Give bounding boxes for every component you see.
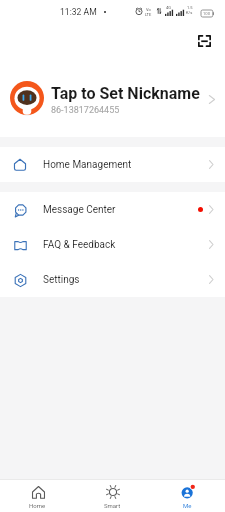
staticText: Settings xyxy=(43,274,80,286)
staticText: Home Management xyxy=(43,159,132,171)
staticText: Vo xyxy=(146,7,151,12)
staticText: Smart xyxy=(104,502,121,509)
button[interactable]: FAQ & Feedback xyxy=(0,227,225,262)
staticText: 1.5 xyxy=(187,5,193,10)
staticText: LTE xyxy=(145,12,152,17)
button[interactable]: Smart xyxy=(75,484,150,509)
staticText: Tap to Set Nickname xyxy=(51,84,200,103)
button[interactable]: Tap to Set Nickname xyxy=(0,55,225,137)
staticText: Me xyxy=(183,502,192,509)
staticText: FAQ & Feedback xyxy=(43,239,116,251)
staticText: 11:32 AM xyxy=(60,7,97,17)
staticText: 100 xyxy=(203,11,211,16)
button[interactable]: Home xyxy=(0,484,75,509)
button[interactable]: Home Management xyxy=(0,147,225,182)
staticText: 86-13817264455 xyxy=(51,105,120,116)
button[interactable]: Scan QR code xyxy=(192,29,216,53)
button[interactable]: Me xyxy=(150,484,225,509)
button[interactable]: Settings xyxy=(0,262,225,297)
staticText: Home xyxy=(29,502,46,509)
staticText: K/s xyxy=(186,10,193,15)
button[interactable]: Message Center xyxy=(0,192,225,227)
staticText: Message Center xyxy=(43,204,116,216)
staticText: 4G xyxy=(166,5,171,10)
